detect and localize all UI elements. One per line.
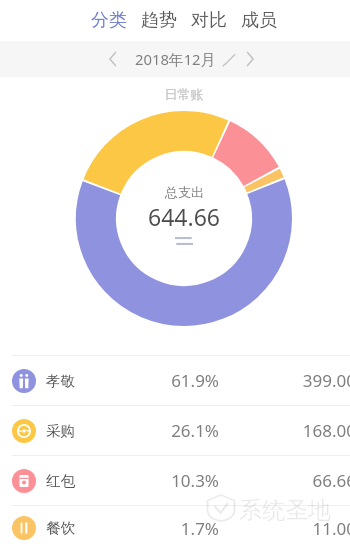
button[interactable]: 红包 — [0, 456, 350, 505]
button[interactable]: 分类 — [84, 3, 134, 38]
staticText: 红包 — [46, 472, 75, 490]
button[interactable]: 成员 — [234, 3, 284, 38]
staticText: 分类 — [91, 9, 127, 32]
staticText: 成员 — [241, 9, 277, 32]
staticText: 趋势 — [141, 9, 177, 32]
staticText: 孝敬 — [46, 372, 75, 390]
staticText: 日常账 — [0, 86, 350, 102]
staticText: 399.00 — [219, 369, 350, 392]
staticText: 10.3% — [76, 469, 219, 492]
staticText: 168.00 — [219, 419, 350, 442]
staticText: 1.7% — [76, 517, 219, 540]
button[interactable]: Edit month — [220, 51, 236, 67]
staticText: 系统圣地 — [239, 496, 331, 525]
button[interactable]: 对比 — [184, 3, 234, 38]
button[interactable]: 采购 — [0, 406, 350, 455]
staticText: 总支出 — [165, 184, 204, 200]
button[interactable]: 餐饮 — [0, 506, 350, 550]
staticText: 26.1% — [76, 419, 219, 442]
staticText: 餐饮 — [46, 519, 75, 537]
staticText: 61.9% — [76, 369, 219, 392]
staticText: 66.66 — [219, 469, 350, 492]
other: Expense breakdown chart — [76, 111, 292, 326]
button[interactable]: 孝敬 — [0, 356, 350, 405]
staticText: 对比 — [191, 9, 227, 32]
button[interactable]: Switch chart type — [175, 237, 193, 245]
button[interactable]: 趋势 — [134, 3, 184, 38]
staticText: 644.66 — [148, 201, 220, 232]
button[interactable]: Previous month — [100, 46, 126, 72]
button[interactable]: Next month — [237, 46, 263, 72]
staticText: 2018年12月 — [135, 49, 216, 69]
staticText: 11.00 — [219, 517, 350, 540]
staticText: 采购 — [46, 422, 75, 440]
